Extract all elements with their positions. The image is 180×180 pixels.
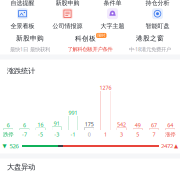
button[interactable]: 全景看板 bbox=[0, 9, 45, 29]
staticText: -3 bbox=[54, 131, 59, 138]
staticText: 64 bbox=[167, 122, 173, 129]
staticText: 全景看板 bbox=[10, 22, 34, 30]
staticText: 2472 bbox=[161, 142, 173, 150]
staticText: 了解科创板开户条件 bbox=[67, 46, 112, 52]
staticText: 条件单 bbox=[103, 0, 121, 7]
staticText: 持仓分析 bbox=[145, 0, 169, 7]
staticText: 智能盯盘 bbox=[145, 22, 169, 30]
staticText: -1 bbox=[70, 131, 75, 138]
button[interactable]: 港股之窗 bbox=[120, 34, 180, 52]
staticText: 新股申购 bbox=[16, 34, 44, 43]
staticText: 中·18港元免费开户 bbox=[129, 46, 171, 53]
staticText: 新股申购 bbox=[55, 0, 79, 7]
staticText: 大字主题 bbox=[100, 22, 124, 30]
staticText: 涨停 bbox=[165, 131, 175, 138]
staticText: 67 bbox=[151, 122, 157, 129]
staticText: 7 bbox=[152, 131, 155, 138]
staticText: 6 bbox=[7, 122, 10, 129]
staticText: 175 bbox=[85, 121, 94, 128]
button[interactable]: 新股申购 bbox=[0, 34, 60, 52]
staticText: 0 bbox=[88, 131, 91, 138]
staticText: ▼ bbox=[2, 143, 6, 149]
button[interactable]: 大字主题 bbox=[90, 9, 135, 29]
staticText: 自选提醒 bbox=[10, 0, 34, 7]
staticText: 542 bbox=[117, 121, 126, 128]
staticText: 49 bbox=[135, 122, 141, 129]
staticText: -7 bbox=[22, 131, 27, 138]
button[interactable]: 科创板 bbox=[60, 34, 120, 52]
staticText: 526 bbox=[9, 142, 18, 150]
staticText: 限时 bbox=[97, 33, 105, 38]
staticText: 3 bbox=[120, 131, 123, 138]
button[interactable]: 公司情报源 bbox=[45, 9, 90, 29]
staticText: 991 bbox=[68, 109, 77, 116]
staticText: 6 bbox=[23, 122, 26, 129]
staticText: 最快1日 最快获利 bbox=[10, 46, 50, 53]
staticText: 5 bbox=[136, 131, 139, 138]
staticText: 跌停 bbox=[3, 131, 13, 138]
staticText: 91 bbox=[54, 120, 60, 127]
staticText: 大盘异动 bbox=[7, 162, 35, 172]
staticText: 涨跌统计 bbox=[7, 66, 35, 76]
staticText: ▲ bbox=[174, 143, 178, 149]
staticText: -5 bbox=[38, 131, 43, 138]
staticText: 科创板 bbox=[75, 34, 96, 43]
button[interactable]: 智能盯盘 bbox=[135, 9, 180, 29]
staticText: 16 bbox=[38, 121, 44, 128]
staticText: 1 bbox=[104, 131, 107, 138]
staticText: 公司情报源 bbox=[52, 22, 82, 30]
staticText: 港股之窗 bbox=[136, 34, 164, 43]
staticText: 1276 bbox=[99, 84, 111, 91]
